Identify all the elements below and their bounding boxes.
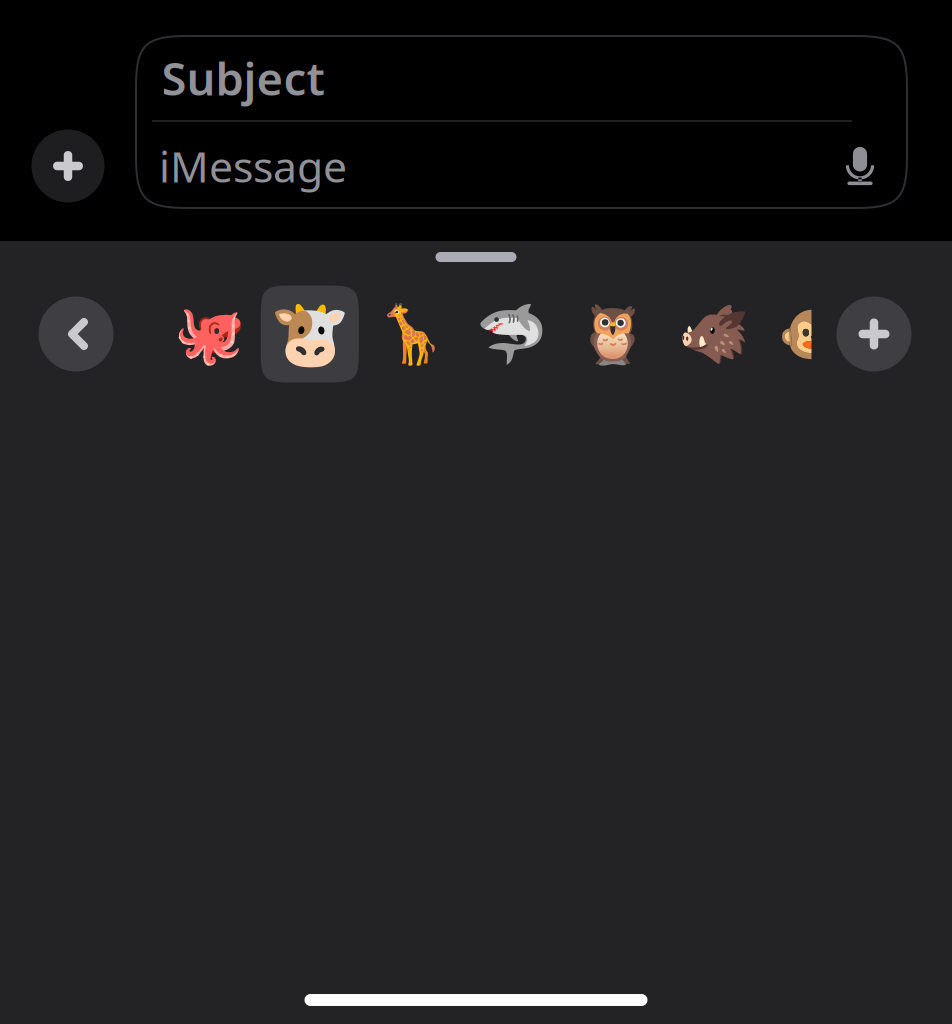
button[interactable]: Monkey xyxy=(764,285,863,382)
staticText: 🦉 xyxy=(577,301,648,367)
staticText: 🐗 xyxy=(677,301,748,367)
button[interactable]: Shark xyxy=(462,285,561,382)
staticText: 🦒 xyxy=(375,301,446,367)
button[interactable]: Add attachment xyxy=(31,129,104,202)
button[interactable]: Owl xyxy=(563,285,662,382)
button[interactable]: Boar xyxy=(663,285,762,382)
button[interactable]: Dictate xyxy=(830,131,890,201)
button[interactable]: Giraffe xyxy=(361,285,460,382)
staticText: iMessage xyxy=(159,138,347,194)
staticText: 🐮 xyxy=(270,297,350,370)
staticText: Subject xyxy=(161,48,324,108)
staticText: 🐙 xyxy=(173,301,244,367)
button[interactable]: Add Memoji xyxy=(836,296,911,371)
button[interactable]: Cow xyxy=(260,285,359,382)
button[interactable]: Subject xyxy=(136,36,907,208)
staticText: 🐵 xyxy=(778,301,849,367)
button[interactable]: Octopus xyxy=(159,285,258,382)
staticText: 🦈 xyxy=(476,301,547,367)
button[interactable]: Back xyxy=(38,296,113,371)
